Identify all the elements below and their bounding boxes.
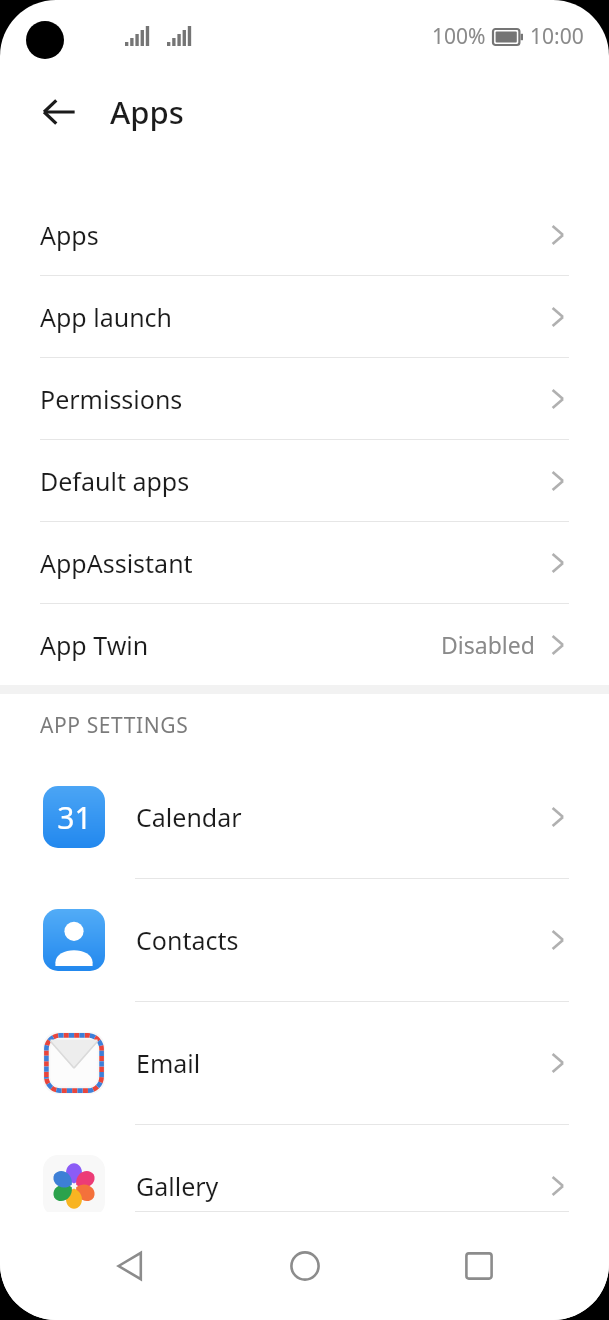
staticText: App Twin xyxy=(40,628,149,662)
button[interactable]: Apps xyxy=(0,194,609,275)
staticText: Contacts xyxy=(136,923,239,957)
button[interactable]: Back xyxy=(24,77,94,147)
button[interactable]: Contacts xyxy=(0,879,609,1001)
staticText: App launch xyxy=(40,300,173,334)
button[interactable]: App launch xyxy=(0,276,609,357)
staticText: 100% xyxy=(432,22,486,51)
button[interactable]: App Twin xyxy=(0,604,609,685)
staticText: AppAssistant xyxy=(40,546,193,580)
staticText: APP SETTINGS xyxy=(40,711,189,740)
staticText: Default apps xyxy=(40,464,190,498)
button[interactable]: Email xyxy=(0,1002,609,1124)
staticText: Email xyxy=(136,1046,201,1080)
staticText: Gallery xyxy=(136,1169,219,1203)
button[interactable]: Recents xyxy=(434,1221,524,1311)
button[interactable] xyxy=(0,1248,609,1288)
button[interactable]: Gallery xyxy=(0,1125,609,1247)
staticText: Calendar xyxy=(136,800,242,834)
staticText: Disabled xyxy=(441,629,535,660)
staticText: 31 xyxy=(57,797,92,838)
button[interactable]: 31 xyxy=(0,756,609,878)
button[interactable]: Back xyxy=(85,1221,175,1311)
button[interactable]: Permissions xyxy=(0,358,609,439)
staticText: 10:00 xyxy=(530,22,584,51)
button[interactable]: Home xyxy=(260,1221,350,1311)
staticText: Permissions xyxy=(40,382,183,416)
staticText: Apps xyxy=(40,218,99,252)
button[interactable]: Default apps xyxy=(0,440,609,521)
staticText: Apps xyxy=(110,91,184,133)
button[interactable]: AppAssistant xyxy=(0,522,609,603)
